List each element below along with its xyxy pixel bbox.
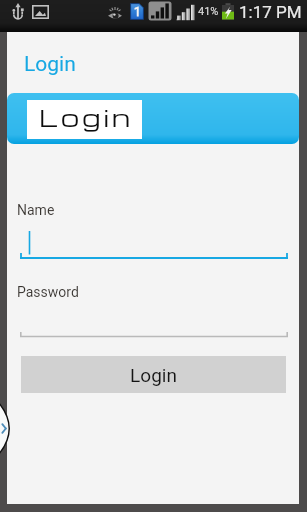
- staticText: Password: [17, 284, 79, 300]
- staticText: Name: [17, 202, 55, 218]
- button[interactable]: Open navigation drawer: [0, 403, 12, 454]
- button[interactable]: Login: [21, 356, 286, 393]
- button[interactable]: [7, 227, 299, 261]
- staticText: Login: [39, 100, 134, 133]
- staticText: 1: [134, 5, 141, 19]
- staticText: Login: [130, 364, 177, 386]
- button[interactable]: [7, 312, 299, 340]
- staticText: 1:17 PM: [239, 2, 302, 22]
- staticText: Login: [24, 52, 76, 77]
- staticText: 41%: [198, 5, 219, 18]
